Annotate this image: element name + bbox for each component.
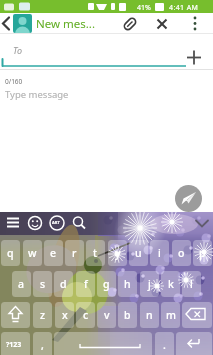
button[interactable]: m <box>161 302 180 328</box>
staticText: q <box>7 246 14 260</box>
button[interactable]: s <box>33 271 52 297</box>
button[interactable] <box>54 332 152 355</box>
staticText: 4:41 AM <box>169 3 199 13</box>
button[interactable]: a <box>12 271 31 297</box>
staticText: i <box>158 246 161 260</box>
staticText: a <box>18 277 25 291</box>
staticText: ART <box>52 220 60 225</box>
staticText: u <box>135 246 142 260</box>
button[interactable]: o <box>172 240 191 266</box>
button[interactable] <box>13 14 32 33</box>
staticText: j <box>148 277 151 291</box>
button[interactable]: c <box>76 302 95 328</box>
button[interactable]: k <box>161 271 180 297</box>
staticText: m <box>166 308 176 322</box>
staticText: y <box>115 246 121 260</box>
button[interactable] <box>188 13 202 34</box>
staticText: d <box>60 277 67 291</box>
button[interactable] <box>1 302 30 328</box>
staticText: x <box>62 308 68 322</box>
button[interactable] <box>69 213 89 234</box>
staticText: , <box>41 338 44 352</box>
staticText: w <box>28 246 37 260</box>
staticText: k <box>168 277 174 291</box>
button[interactable]: e <box>44 240 63 266</box>
staticText: Type message <box>5 88 69 101</box>
staticText: s <box>40 277 46 291</box>
button[interactable]: b <box>118 302 137 328</box>
staticText: e <box>50 246 57 260</box>
button[interactable]: z <box>33 302 52 328</box>
button[interactable]: p <box>193 240 212 266</box>
button[interactable]: , <box>33 332 52 355</box>
button[interactable]: ART <box>47 213 67 234</box>
button[interactable]: i <box>150 240 169 266</box>
staticText: b <box>124 308 131 322</box>
button[interactable] <box>3 213 23 234</box>
staticText: . <box>163 338 166 352</box>
staticText: p <box>199 246 206 260</box>
staticText: r <box>72 246 77 260</box>
staticText: To <box>13 44 22 56</box>
staticText: 41% <box>137 3 151 13</box>
staticText: l <box>190 277 193 291</box>
button[interactable] <box>176 332 212 355</box>
button[interactable]: l <box>182 271 201 297</box>
button[interactable]: q <box>1 240 20 266</box>
button[interactable]: j <box>140 271 159 297</box>
button[interactable]: n <box>140 302 159 328</box>
staticText: t <box>93 246 98 260</box>
staticText: h <box>124 277 131 291</box>
button[interactable] <box>0 13 12 34</box>
button[interactable]: x <box>55 302 74 328</box>
staticText: New mes... <box>36 16 96 32</box>
staticText: z <box>40 308 46 322</box>
button[interactable]: w <box>23 240 42 266</box>
button[interactable]: r <box>65 240 84 266</box>
button[interactable] <box>175 185 202 212</box>
button[interactable]: v <box>97 302 116 328</box>
staticText: 0/160 <box>5 77 23 86</box>
staticText: f <box>84 277 88 291</box>
button[interactable]: To <box>0 34 213 70</box>
staticText: o <box>178 246 185 260</box>
button[interactable] <box>153 15 171 33</box>
button[interactable]: f <box>76 271 95 297</box>
button[interactable]: t <box>86 240 105 266</box>
button[interactable] <box>25 213 45 234</box>
staticText: n <box>146 308 153 322</box>
button[interactable] <box>192 213 212 234</box>
button[interactable]: 0/160 <box>0 70 213 212</box>
button[interactable] <box>1 332 30 355</box>
button[interactable]: . <box>155 332 174 355</box>
button[interactable]: g <box>97 271 116 297</box>
button[interactable] <box>121 15 139 33</box>
button[interactable]: d <box>54 271 73 297</box>
staticText: ?123 <box>6 340 22 350</box>
staticText: g <box>103 277 110 291</box>
button[interactable] <box>182 302 212 328</box>
staticText: c <box>83 308 89 322</box>
staticText: v <box>104 308 110 322</box>
button[interactable]: u <box>129 240 148 266</box>
button[interactable]: h <box>118 271 137 297</box>
button[interactable]: y <box>108 240 127 266</box>
